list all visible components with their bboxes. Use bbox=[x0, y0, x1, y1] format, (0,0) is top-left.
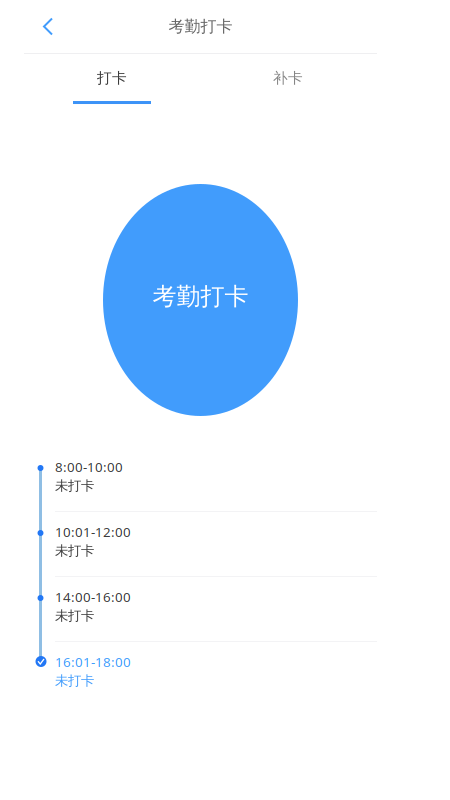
staticText: 未打卡 bbox=[55, 543, 94, 559]
staticText: 8:00-10:00 bbox=[55, 458, 123, 476]
staticText: 未打卡 bbox=[55, 478, 94, 494]
button[interactable]: 打卡 bbox=[24, 54, 200, 107]
staticText: 补卡 bbox=[273, 69, 303, 87]
staticText: 考勤打卡 bbox=[168, 17, 232, 36]
button[interactable]: 补卡 bbox=[200, 54, 376, 107]
staticText: 未打卡 bbox=[55, 673, 94, 689]
button[interactable]: Back bbox=[26, 4, 70, 48]
button[interactable]: 10:01-12:00 bbox=[0, 512, 401, 577]
staticText: 16:01-18:00 bbox=[55, 653, 131, 671]
button[interactable]: 考勤打卡 bbox=[103, 184, 298, 416]
staticText: 10:01-12:00 bbox=[55, 523, 131, 541]
staticText: 未打卡 bbox=[55, 608, 94, 624]
button[interactable]: 14:00-16:00 bbox=[0, 577, 401, 642]
button[interactable]: 8:00-10:00 bbox=[0, 447, 401, 512]
staticText: 考勤打卡 bbox=[152, 282, 248, 311]
staticText: 14:00-16:00 bbox=[55, 588, 131, 606]
button[interactable]: 16:01-18:00 bbox=[0, 642, 401, 707]
staticText: 打卡 bbox=[97, 69, 127, 87]
